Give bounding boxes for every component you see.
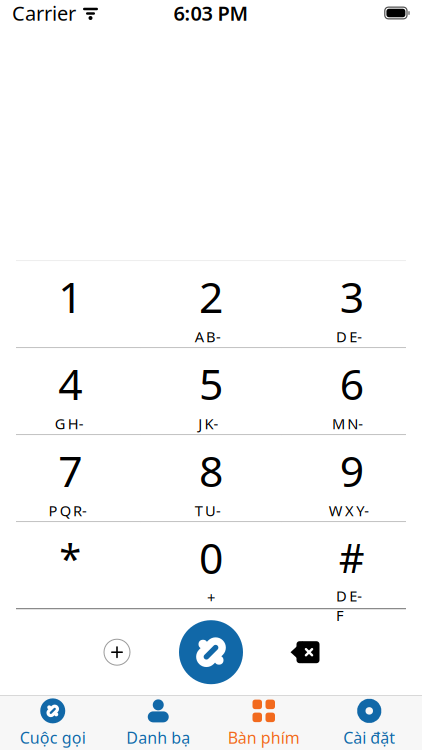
staticText: 1 bbox=[58, 268, 82, 325]
staticText: ABC bbox=[195, 327, 227, 346]
button[interactable]: 3 bbox=[281, 261, 422, 347]
button[interactable]: 5 bbox=[141, 348, 281, 434]
staticText: MNO bbox=[332, 414, 371, 433]
button[interactable]: Cài đặt bbox=[316, 699, 422, 747]
button[interactable]: 8 bbox=[141, 435, 281, 521]
staticText: TUV bbox=[195, 501, 227, 520]
button[interactable]: 4 bbox=[0, 348, 141, 434]
staticText: PQRS bbox=[48, 501, 92, 520]
staticText: Danh bạ bbox=[126, 727, 190, 748]
staticText: * bbox=[59, 531, 81, 584]
staticText: 0 bbox=[199, 529, 223, 586]
button[interactable]: # bbox=[281, 522, 422, 608]
staticText: 8 bbox=[199, 442, 223, 499]
button[interactable]: 0 bbox=[141, 522, 281, 608]
staticText: WXYZ bbox=[329, 501, 374, 520]
button[interactable]: Delete bbox=[277, 617, 333, 687]
button[interactable]: Danh bạ bbox=[105, 699, 211, 747]
button[interactable]: Add number bbox=[89, 617, 145, 687]
staticText: 3 bbox=[340, 268, 364, 325]
staticText: Cuộc gọi bbox=[20, 727, 86, 748]
staticText: Cài đặt bbox=[343, 727, 395, 748]
button[interactable]: Cuộc gọi bbox=[0, 699, 105, 747]
button[interactable]: 2 bbox=[141, 261, 281, 347]
staticText: 6:03 PM bbox=[173, 0, 248, 26]
staticText: 6 bbox=[340, 355, 364, 412]
button[interactable]: 7 bbox=[0, 435, 141, 521]
button[interactable]: 9 bbox=[281, 435, 422, 521]
staticText: 5 bbox=[199, 355, 223, 412]
staticText: 4 bbox=[58, 355, 82, 412]
staticText: DEF bbox=[336, 586, 367, 605]
staticText: 2 bbox=[199, 268, 223, 325]
button[interactable]: Bàn phím bbox=[211, 699, 316, 747]
staticText: 7 bbox=[58, 442, 82, 499]
button[interactable]: Call bbox=[171, 612, 251, 692]
staticText: DEF bbox=[336, 327, 367, 346]
staticText: # bbox=[339, 531, 365, 584]
staticText: Carrier bbox=[12, 0, 76, 26]
button[interactable]: 6 bbox=[281, 348, 422, 434]
button[interactable]: * bbox=[0, 522, 141, 608]
staticText: JKL bbox=[198, 414, 224, 433]
staticText: + bbox=[207, 588, 215, 607]
button[interactable]: 1 bbox=[0, 261, 141, 347]
staticText: Bàn phím bbox=[228, 727, 300, 748]
staticText: 9 bbox=[340, 442, 364, 499]
staticText: GHI bbox=[55, 414, 86, 433]
